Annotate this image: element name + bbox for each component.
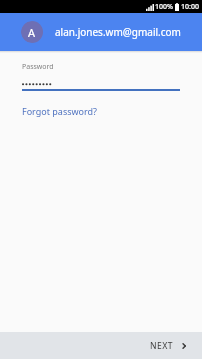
- staticText: A: [28, 25, 36, 40]
- staticText: NEXT: [150, 340, 173, 352]
- other: Next: [180, 342, 188, 350]
- staticText: 100%: [155, 2, 173, 12]
- staticText: Forgot password?: [22, 105, 98, 117]
- button[interactable]: Password: [22, 62, 180, 91]
- staticText: Password: [22, 62, 54, 72]
- button[interactable]: A: [21, 21, 182, 43]
- staticText: 10:00: [181, 2, 199, 12]
- button[interactable]: Forgot password?: [22, 103, 98, 119]
- staticText: alan.jones.wm@gmail.com: [55, 25, 181, 39]
- button[interactable]: NEXT: [136, 332, 202, 359]
